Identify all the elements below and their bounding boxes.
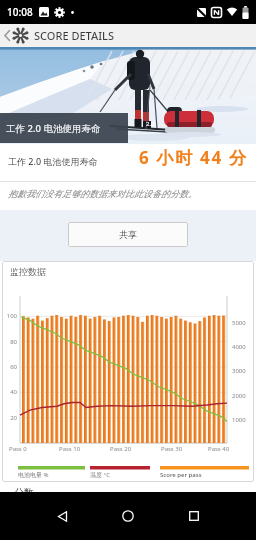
button[interactable] [166, 492, 222, 540]
staticText: 共享 [119, 229, 137, 240]
button[interactable] [2, 24, 12, 46]
staticText: 监控数据 [10, 266, 46, 277]
staticText: 1000 [232, 416, 246, 424]
staticText: Pass 30 [161, 445, 183, 453]
staticText: Pass 40 [208, 445, 230, 453]
button[interactable]: 共享 [68, 222, 188, 247]
staticText: 分数 [14, 486, 34, 499]
staticText: 抱歉我们没有足够的数据来对比此设备的分数。 [8, 188, 197, 199]
button[interactable] [100, 492, 156, 540]
staticText: 电池电量 % [18, 471, 49, 479]
staticText: 6 小时 44 分 [139, 146, 248, 169]
staticText: 60 [2, 363, 17, 371]
staticText: 100 [2, 312, 17, 320]
staticText: Pass 20 [110, 445, 132, 453]
staticText: 20 [2, 414, 17, 422]
staticText: 温度 °C [90, 471, 110, 479]
staticText: 3000 [232, 367, 246, 375]
staticText: 2.0 [146, 120, 155, 128]
staticText: 工作 2.0 电池使用寿命 [6, 122, 101, 135]
staticText: 工作 2.0 电池使用寿命 [8, 155, 98, 167]
button[interactable] [34, 492, 90, 540]
staticText: 80 [2, 338, 17, 346]
staticText: Score per pass [160, 471, 202, 479]
staticText: 40 [2, 388, 17, 396]
staticText: SCORE DETAILS [34, 28, 114, 43]
staticText: 2000 [232, 392, 246, 400]
staticText: 4000 [232, 343, 246, 351]
staticText: Pass 0 [9, 445, 27, 453]
staticText: 5000 [232, 319, 246, 327]
staticText: 10:08 [7, 5, 33, 19]
staticText: Pass 10 [59, 445, 81, 453]
